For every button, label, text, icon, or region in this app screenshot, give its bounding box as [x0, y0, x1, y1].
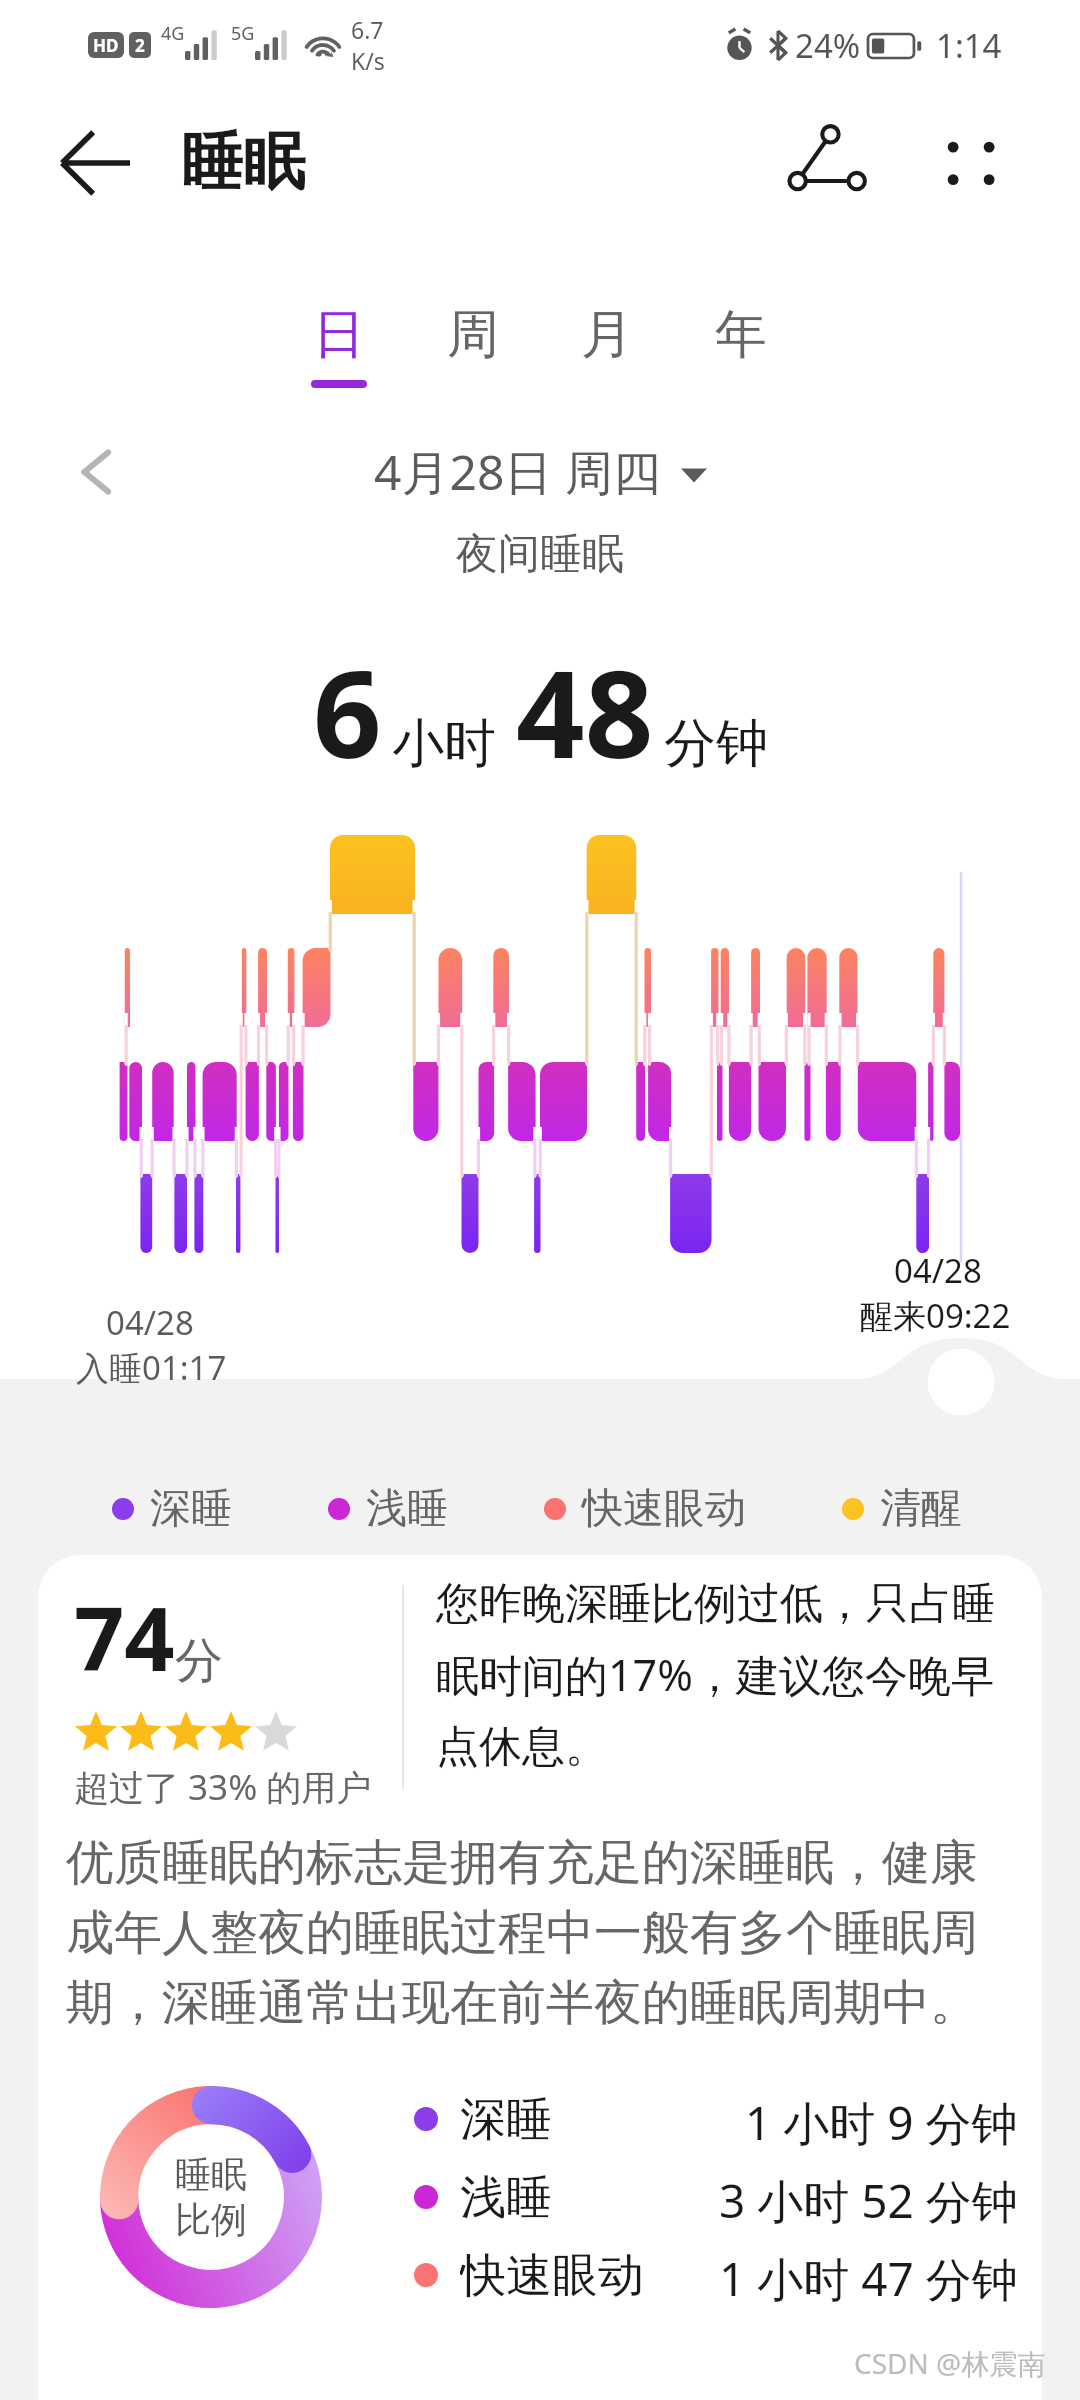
- staticText: 小时: [392, 711, 496, 777]
- staticText: 快速眼动: [460, 2247, 644, 2303]
- button[interactable]: Sleep settings: [927, 1348, 995, 1416]
- staticText: 醒来09:22: [860, 1293, 1011, 1338]
- staticText: 睡眠: [181, 123, 305, 201]
- button[interactable]: More options: [938, 127, 1010, 199]
- button[interactable]: 4月28日 周四: [374, 439, 707, 505]
- staticText: 24%: [795, 23, 861, 68]
- button[interactable]: 年: [674, 302, 808, 388]
- staticText: 浅睡: [366, 1483, 448, 1535]
- button[interactable]: 月: [540, 302, 674, 388]
- button[interactable]: 深睡: [112, 1483, 232, 1535]
- staticText: 1 小时 47 分钟: [719, 2247, 1018, 2303]
- staticText: 您昨晚深睡比例过低，只占睡眠时间的17%，建议您今晚早点休息。: [436, 1577, 999, 1774]
- staticText: 4月28日 周四: [374, 439, 661, 505]
- button[interactable]: Back: [58, 123, 138, 203]
- staticText: 5G: [231, 21, 255, 46]
- staticText: 分: [175, 1631, 223, 1691]
- staticText: 04/28: [894, 1248, 982, 1293]
- staticText: CSDN @林震南: [854, 2344, 1046, 2382]
- staticText: 1:14: [936, 23, 1002, 68]
- staticText: 04/28: [106, 1300, 194, 1345]
- staticText: 比例: [175, 2197, 247, 2242]
- staticText: 日: [313, 302, 365, 368]
- staticText: 48: [516, 630, 654, 793]
- staticText: 浅睡: [460, 2169, 552, 2225]
- staticText: 清醒: [880, 1483, 962, 1535]
- button[interactable]: 日: [272, 302, 406, 388]
- staticText: 月: [581, 302, 633, 368]
- staticText: 深睡: [460, 2091, 552, 2147]
- staticText: 超过了 33% 的用户: [74, 1763, 372, 1811]
- staticText: 深睡: [150, 1483, 232, 1535]
- staticText: K/s: [351, 45, 385, 76]
- staticText: 6.7: [351, 14, 384, 45]
- staticText: 1 小时 9 分钟: [745, 2091, 1018, 2147]
- button[interactable]: 清醒: [842, 1483, 962, 1535]
- button[interactable]: 快速眼动: [544, 1483, 746, 1535]
- staticText: 74: [74, 1577, 175, 1697]
- staticText: 年: [715, 302, 767, 368]
- staticText: 睡眠: [175, 2152, 247, 2197]
- staticText: 2: [135, 34, 145, 57]
- staticText: HD: [93, 34, 119, 57]
- staticText: 入睡01:17: [76, 1345, 227, 1390]
- staticText: 4G: [161, 21, 185, 46]
- staticText: 周: [447, 302, 499, 368]
- staticText: 夜间睡眠: [456, 528, 624, 581]
- button[interactable]: 浅睡: [328, 1483, 448, 1535]
- button[interactable]: Share: [787, 122, 869, 204]
- staticText: 优质睡眠的标志是拥有充足的深睡眠，健康成年人整夜的睡眠过程中一般有多个睡眠周期，…: [66, 1833, 1020, 2034]
- button[interactable]: Previous day: [62, 437, 132, 507]
- staticText: 3 小时 52 分钟: [719, 2169, 1018, 2225]
- staticText: 分钟: [664, 711, 768, 777]
- staticText: 6: [313, 630, 382, 793]
- button[interactable]: 74: [38, 1555, 1042, 2400]
- button[interactable]: 周: [406, 302, 540, 388]
- staticText: 快速眼动: [582, 1483, 746, 1535]
